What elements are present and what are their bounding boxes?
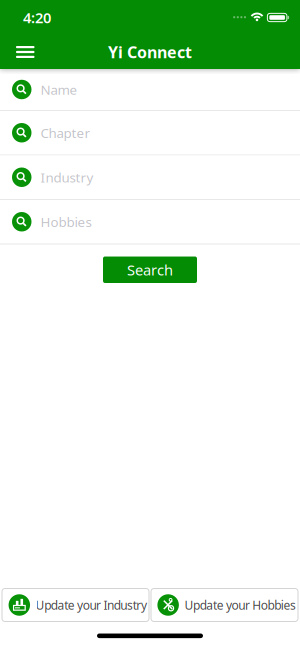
button[interactable]: Chapter [0,111,300,154]
staticText: Chapter [40,124,90,142]
staticText: Yi Connect [108,41,192,63]
button[interactable]: Search [103,256,197,283]
staticText: Hobbies [40,213,91,231]
staticText: Search [127,260,173,279]
button[interactable]: Hobbies [0,200,300,243]
button[interactable]: Update your Industry [2,588,149,621]
staticText: Update your Hobbies [184,597,296,613]
button[interactable]: Industry [0,155,300,199]
button[interactable]: Name [0,69,300,110]
staticText: 4:20 [23,8,51,27]
staticText: Name [40,81,77,98]
staticText: Update your Industry [36,597,147,613]
button[interactable]: Menu [0,38,34,66]
button[interactable]: Update your Hobbies [151,588,298,621]
staticText: Industry [40,168,93,186]
